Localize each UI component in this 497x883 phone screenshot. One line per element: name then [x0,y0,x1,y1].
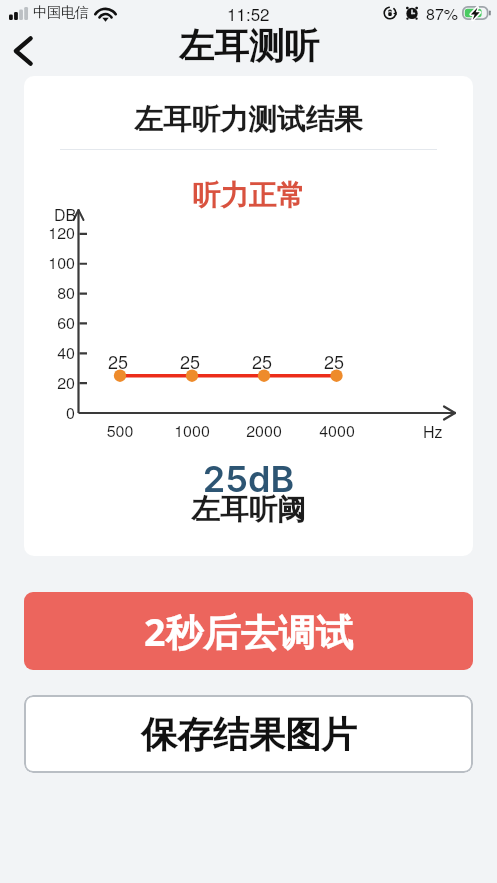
staticText: 2秒后去调试 [144,606,353,657]
staticText: 保存结果图片 [141,712,357,757]
staticText: 中国电信 [33,4,89,22]
staticText: 120 [24,221,75,244]
staticText: 左耳测听 [179,24,319,68]
staticText: 500 [90,419,150,442]
staticText: 87% [426,2,459,25]
staticText: DB [54,203,77,226]
staticText: 左耳听力测试结果 [24,102,473,138]
staticText: 听力正常 [24,178,473,213]
staticText: 25 [160,348,220,374]
staticText: 80 [24,281,75,304]
button[interactable]: Back [4,28,50,74]
staticText: 25dB [24,457,473,501]
button[interactable]: 2秒后去调试 [24,592,473,670]
staticText: 0 [24,401,75,424]
staticText: 25 [232,348,292,374]
staticText: 20 [24,371,75,394]
staticText: 100 [24,251,75,274]
staticText: 2000 [234,419,294,442]
staticText: 25 [88,348,148,374]
staticText: 4000 [307,419,367,442]
staticText: 左耳听阈 [24,492,473,528]
staticText: Hz [423,420,443,443]
staticText: 60 [24,311,75,334]
staticText: 25 [304,348,364,374]
button[interactable]: 保存结果图片 [24,695,473,773]
staticText: 11:52 [227,1,270,25]
staticText: 1000 [162,419,222,442]
staticText: 40 [24,341,75,364]
